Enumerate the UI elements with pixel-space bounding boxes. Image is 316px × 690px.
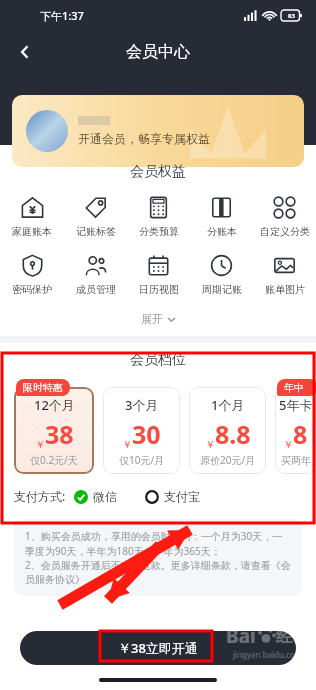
staticText: 会员档位 — [0, 351, 316, 369]
button[interactable]: 分类预算 — [127, 194, 190, 240]
button[interactable]: 12个月 — [14, 387, 94, 474]
staticText: 支付方式: — [14, 488, 66, 504]
staticText: 下午1:37 — [40, 8, 84, 23]
staticText: 支付宝 — [164, 489, 200, 504]
staticText: 分类预算 — [139, 225, 179, 238]
staticText: 分账本 — [207, 225, 237, 238]
staticText: Bai — [226, 623, 256, 649]
staticText: ￥ — [35, 438, 45, 451]
staticText: 经验 — [276, 626, 310, 647]
staticText: 展开 — [141, 312, 163, 326]
button[interactable]: 成员管理 — [64, 252, 127, 298]
button[interactable]: 分账本 — [190, 194, 253, 240]
staticText: 年中大 — [284, 381, 311, 394]
staticText: 1、购买会员成功，享用的会员时间为：一个月为30天，一季度为90天，半年为180… — [25, 529, 291, 558]
staticText: 日历视图 — [139, 283, 179, 296]
staticText: 38 — [45, 417, 74, 451]
staticText: 成员管理 — [76, 283, 116, 296]
staticText: 开通会员，畅享专属权益 — [78, 131, 210, 146]
staticText: 1个月 — [211, 396, 245, 414]
button[interactable]: 微信 — [74, 489, 117, 504]
staticText: 自定义分类 — [260, 225, 310, 238]
button[interactable]: 家庭账本 — [0, 194, 64, 240]
staticText: 密码保护 — [12, 283, 52, 296]
staticText: 仅10元/月 — [119, 453, 165, 467]
staticText: 会员中心 — [126, 42, 190, 62]
button[interactable]: 1个月 — [189, 387, 266, 474]
staticText: 2、会员服务开通后不支持退款。更多详细条款，请查看《会员服务协议》 — [25, 558, 291, 586]
staticText: 83 — [288, 12, 295, 20]
staticText: 家庭账本 — [12, 225, 52, 238]
button[interactable]: 自定义分类 — [253, 194, 316, 240]
staticText: 12个月 — [34, 396, 75, 414]
staticText: 微信 — [93, 489, 117, 504]
staticText: ￥ — [205, 438, 215, 451]
staticText: 30 — [132, 417, 161, 451]
button[interactable]: Back — [6, 33, 44, 71]
button[interactable]: 密码保护 — [0, 252, 64, 298]
staticText: ￥ — [283, 438, 293, 451]
staticText: 会员权益 — [0, 163, 316, 181]
staticText: 仅0.2元/天 — [30, 453, 78, 467]
button[interactable]: 日历视图 — [127, 252, 190, 298]
staticText: ￥ — [122, 438, 132, 451]
staticText: ￥38立即开通 — [118, 639, 198, 657]
button[interactable]: 周期记账 — [190, 252, 253, 298]
button[interactable]: 3个月 — [103, 387, 180, 474]
staticText: 买两年 — [281, 454, 311, 467]
button[interactable]: 展开 — [0, 308, 316, 330]
staticText: 周期记账 — [202, 283, 242, 296]
staticText: 限时特惠 — [23, 381, 63, 394]
button[interactable]: 账单图片 — [253, 252, 316, 298]
button[interactable]: 5年卡 — [275, 387, 316, 474]
staticText: 账单图片 — [265, 283, 305, 296]
staticText: jingyan.baidu.com — [233, 649, 303, 660]
button[interactable]: 支付宝 — [145, 489, 200, 504]
button[interactable]: 开通会员，畅享专属权益 — [12, 95, 304, 167]
staticText: 5年卡 — [279, 396, 313, 414]
button[interactable]: 记账标签 — [64, 194, 127, 240]
staticText: 原价20元/月 — [200, 453, 256, 467]
staticText: 记账标签 — [76, 225, 116, 238]
staticText: 3个月 — [125, 396, 159, 414]
staticText: 8 — [293, 417, 308, 451]
button[interactable]: ￥38立即开通 — [20, 631, 296, 665]
staticText: 8.8 — [215, 417, 251, 451]
